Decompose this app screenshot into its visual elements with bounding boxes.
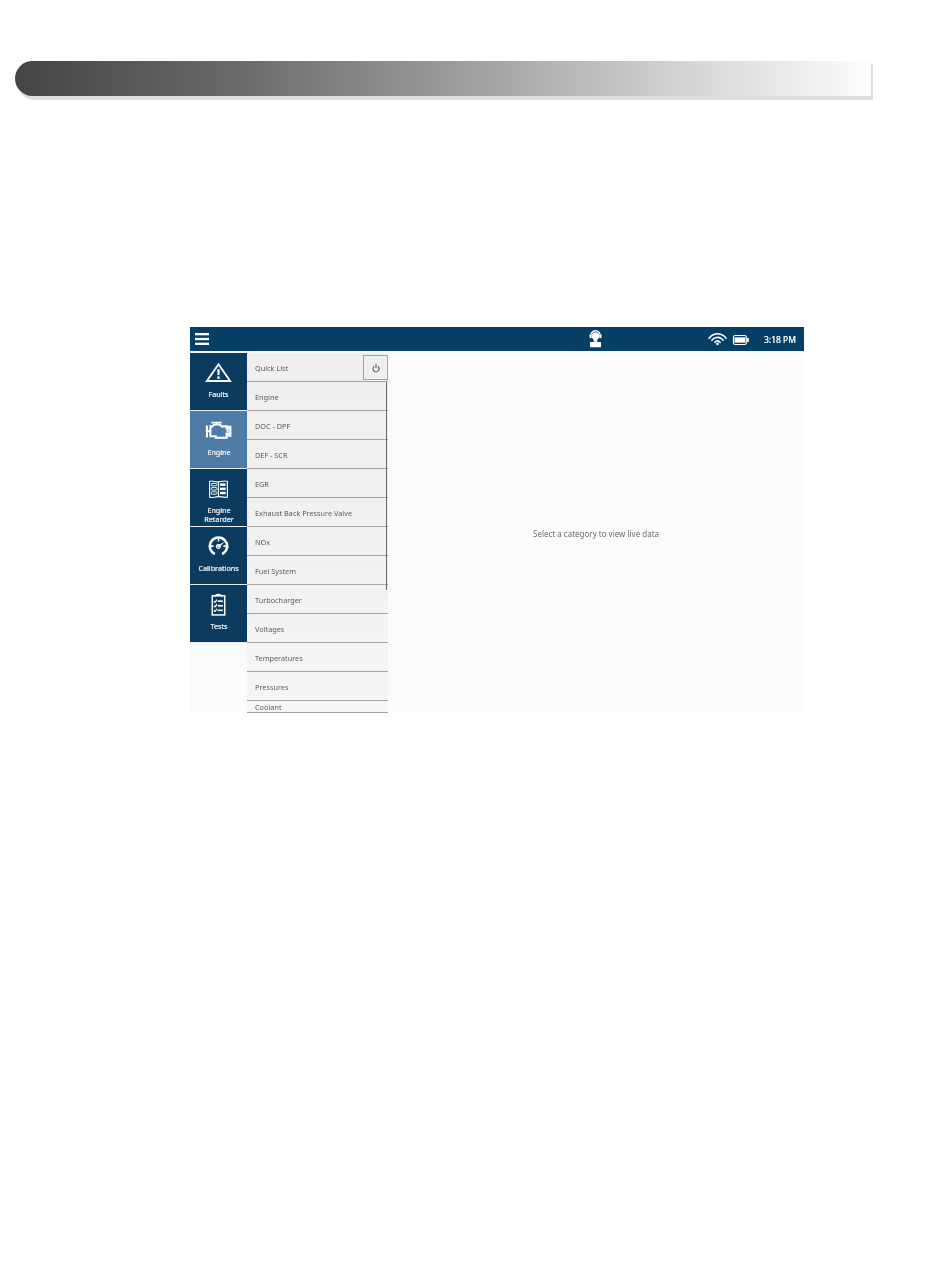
button[interactable]: NOx (247, 527, 388, 556)
staticText: Engine Retarder (204, 505, 234, 524)
button[interactable]: Pressures (247, 672, 388, 701)
staticText: Fuel System (255, 566, 296, 576)
staticText: Coolant (255, 702, 282, 712)
button[interactable]: EGR (247, 469, 388, 498)
button[interactable]: Voltages (247, 614, 388, 643)
button[interactable]: Faults (190, 353, 247, 411)
staticText: EGR (255, 479, 269, 489)
button[interactable]: Engine (247, 382, 388, 411)
staticText: Faults (208, 389, 229, 399)
button[interactable]: DEF - SCR (247, 440, 388, 469)
staticText: Exhaust Back Pressure Valve (255, 508, 352, 518)
button[interactable]: Tests (190, 585, 247, 643)
staticText: DEF - SCR (255, 450, 288, 460)
staticText: NOx (255, 537, 271, 547)
button[interactable]: Turbocharger (247, 585, 388, 614)
staticText: Quick List (255, 363, 363, 373)
staticText: 3:18 PM (764, 334, 796, 346)
staticText: Temperatures (255, 653, 303, 663)
staticText: Engine (207, 447, 231, 457)
staticText: DOC - DPF (255, 421, 291, 431)
button[interactable]: Coolant (247, 701, 388, 713)
button[interactable]: Engine (190, 411, 247, 469)
button[interactable]: Engine Retarder (190, 469, 247, 527)
staticText: Turbocharger (255, 595, 302, 605)
button[interactable]: DOC - DPF (247, 411, 388, 440)
staticText: Tests (210, 621, 228, 631)
button[interactable]: Refresh quick list (363, 355, 388, 380)
staticText: Voltages (255, 624, 285, 634)
staticText: Pressures (255, 682, 289, 692)
staticText: Calibrations (198, 563, 239, 573)
button[interactable]: Calibrations (190, 527, 247, 585)
button[interactable]: Exhaust Back Pressure Valve (247, 498, 388, 527)
staticText: Select a category to view live data (533, 528, 660, 539)
staticText: Engine (255, 392, 279, 402)
button[interactable]: Support (584, 327, 606, 351)
button[interactable]: Menu (192, 329, 212, 349)
button[interactable]: Temperatures (247, 643, 388, 672)
button[interactable]: Quick List (247, 353, 388, 382)
button[interactable]: Fuel System (247, 556, 388, 585)
